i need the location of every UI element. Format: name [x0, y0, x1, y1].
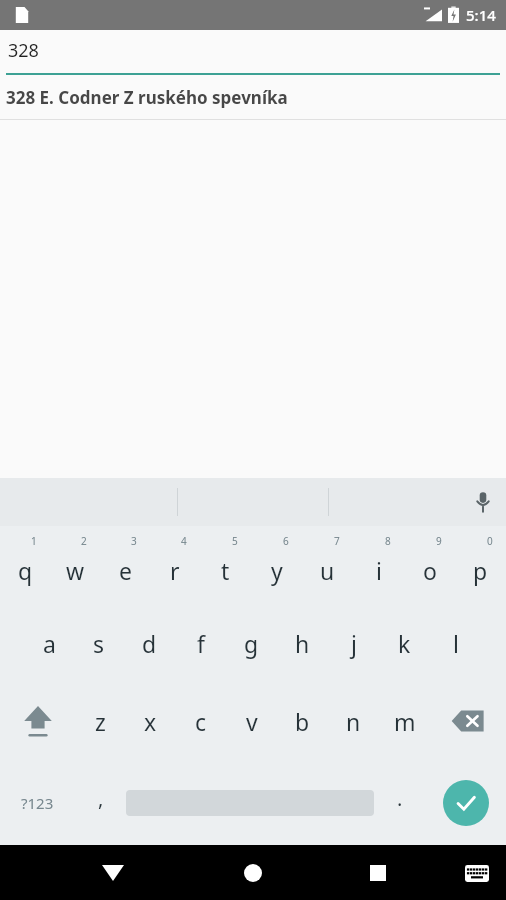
- staticText: n: [346, 706, 361, 737]
- staticText: s: [93, 628, 105, 659]
- button[interactable]: Backspace: [430, 682, 506, 760]
- button[interactable]: 8: [353, 526, 404, 604]
- button[interactable]: m: [379, 682, 430, 760]
- staticText: u: [320, 555, 335, 586]
- button[interactable]: 0: [455, 526, 506, 604]
- button[interactable]: n: [328, 682, 379, 760]
- button[interactable]: k: [379, 604, 430, 682]
- button[interactable]: b: [277, 682, 328, 760]
- button[interactable]: l: [430, 604, 481, 682]
- button[interactable]: Recents: [355, 850, 401, 896]
- staticText: i: [376, 555, 382, 586]
- button[interactable]: Back: [90, 850, 136, 896]
- staticText: 7: [334, 534, 340, 548]
- button[interactable]: s: [74, 604, 124, 682]
- staticText: 2: [81, 534, 87, 548]
- staticText: ?123: [21, 793, 54, 813]
- staticText: .: [397, 785, 403, 812]
- button[interactable]: Voice input: [460, 478, 506, 526]
- button[interactable]: 2: [50, 526, 100, 604]
- button[interactable]: a: [24, 604, 74, 682]
- staticText: g: [244, 628, 259, 659]
- button[interactable]: d: [124, 604, 175, 682]
- staticText: j: [351, 628, 357, 659]
- button[interactable]: 1: [0, 526, 50, 604]
- staticText: x: [144, 706, 157, 737]
- staticText: 9: [436, 534, 442, 548]
- staticText: z: [95, 706, 106, 737]
- button[interactable]: Shift: [0, 682, 75, 760]
- staticText: h: [295, 628, 310, 659]
- button[interactable]: 328 E. Codner Z ruského spevníka: [0, 75, 506, 119]
- button[interactable]: h: [277, 604, 328, 682]
- button[interactable]: j: [328, 604, 379, 682]
- staticText: c: [195, 706, 207, 737]
- button[interactable]: 3: [100, 526, 150, 604]
- staticText: 328: [8, 38, 39, 63]
- staticText: o: [423, 555, 437, 586]
- button[interactable]: c: [175, 682, 226, 760]
- staticText: f: [197, 628, 205, 659]
- staticText: e: [119, 555, 132, 586]
- button[interactable]: v: [226, 682, 277, 760]
- button[interactable]: ,: [75, 760, 126, 845]
- button[interactable]: z: [75, 682, 125, 760]
- button[interactable]: ?123: [0, 760, 75, 845]
- staticText: t: [221, 555, 230, 586]
- button[interactable]: Space: [126, 760, 374, 845]
- button[interactable]: f: [175, 604, 226, 682]
- button[interactable]: 328: [0, 30, 506, 75]
- staticText: 5:14: [466, 5, 496, 25]
- staticText: ,: [98, 785, 104, 812]
- staticText: q: [18, 555, 33, 586]
- button[interactable]: 7: [302, 526, 353, 604]
- staticText: 328 E. Codner Z ruského spevníka: [6, 86, 288, 109]
- staticText: 0: [487, 534, 493, 548]
- button[interactable]: .: [374, 760, 425, 845]
- staticText: 5: [232, 534, 238, 548]
- staticText: w: [66, 555, 85, 586]
- button[interactable]: Enter: [425, 760, 506, 845]
- staticText: 1: [31, 534, 37, 548]
- staticText: v: [246, 706, 258, 737]
- button[interactable]: 5: [200, 526, 251, 604]
- staticText: a: [43, 628, 56, 659]
- staticText: b: [295, 706, 310, 737]
- button[interactable]: Switch keyboard: [454, 850, 500, 896]
- staticText: r: [170, 555, 180, 586]
- staticText: m: [394, 706, 416, 737]
- button[interactable]: 9: [404, 526, 455, 604]
- staticText: 4: [181, 534, 187, 548]
- button[interactable]: 4: [150, 526, 200, 604]
- staticText: l: [453, 628, 459, 659]
- button[interactable]: g: [226, 604, 277, 682]
- button[interactable]: x: [125, 682, 175, 760]
- staticText: k: [398, 628, 411, 659]
- staticText: d: [142, 628, 157, 659]
- staticText: 3: [131, 534, 137, 548]
- staticText: 8: [385, 534, 391, 548]
- staticText: 6: [283, 534, 289, 548]
- button[interactable]: Home: [230, 850, 276, 896]
- staticText: y: [271, 555, 283, 586]
- staticText: p: [473, 555, 488, 586]
- button[interactable]: 6: [251, 526, 302, 604]
